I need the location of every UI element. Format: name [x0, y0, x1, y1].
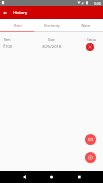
- button[interactable]: Water: [69, 19, 103, 32]
- staticText: Electricity: [44, 23, 60, 28]
- staticText: Water: [81, 23, 91, 28]
- staticText: Status: [87, 38, 97, 42]
- staticText: Rent: [4, 38, 11, 42]
- button[interactable]: ₹700: [0, 42, 103, 53]
- button[interactable]: Mail: [85, 134, 96, 145]
- button[interactable]: Record: [85, 152, 96, 163]
- button[interactable]: Rent: [0, 19, 35, 32]
- staticText: Date: [48, 38, 55, 42]
- button[interactable]: Back: [0, 6, 9, 20]
- staticText: ₹700: [3, 44, 13, 49]
- staticText: 30/5/2018: [42, 44, 61, 49]
- staticText: Rent: [14, 23, 22, 28]
- staticText: History: [13, 10, 28, 16]
- button[interactable]: Electricity: [35, 19, 69, 32]
- staticText: 9:08: [94, 1, 101, 6]
